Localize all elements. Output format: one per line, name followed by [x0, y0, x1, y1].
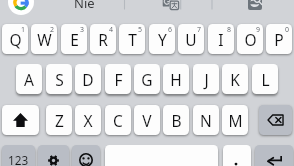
staticText: 1	[21, 25, 26, 35]
staticText: 5	[138, 25, 143, 35]
staticText: J	[204, 69, 209, 90]
button[interactable]: Google Search	[8, 0, 34, 15]
button[interactable]: Shift	[2, 105, 39, 135]
button[interactable]: M	[222, 105, 248, 135]
staticText: H	[170, 69, 182, 90]
button[interactable]: E	[61, 24, 87, 54]
button[interactable]: U	[178, 24, 204, 54]
staticText: G	[141, 69, 153, 90]
button[interactable]	[223, 145, 251, 166]
button[interactable]: Y	[149, 24, 175, 54]
button[interactable]: Nie	[44, 0, 124, 13]
button[interactable]: Emoji	[72, 145, 100, 166]
staticText: F	[114, 69, 123, 90]
staticText: 4	[109, 25, 114, 35]
button[interactable]: Enter	[255, 145, 293, 166]
staticText: S	[55, 69, 64, 90]
staticText: Nie	[74, 0, 95, 12]
button[interactable]: Settings	[38, 145, 69, 166]
staticText: 9	[256, 25, 261, 35]
staticText: N	[200, 110, 212, 131]
staticText: 6	[168, 25, 173, 35]
button[interactable]: Translate	[161, 0, 179, 11]
staticText: 0	[285, 25, 290, 35]
staticText: C	[113, 110, 123, 131]
button[interactable]: W	[31, 24, 57, 54]
staticText: 2	[50, 25, 55, 35]
staticText: 123	[8, 152, 29, 166]
staticText: V	[142, 110, 152, 131]
staticText: I	[218, 29, 224, 50]
button[interactable]: H	[163, 64, 189, 94]
button[interactable]: V	[134, 105, 160, 135]
staticText: P	[274, 29, 284, 50]
button[interactable]: F	[105, 64, 131, 94]
button[interactable]: Search with image	[248, 0, 262, 10]
staticText: L	[261, 69, 270, 90]
staticText: Z	[55, 110, 64, 131]
button[interactable]: R	[90, 24, 116, 54]
staticText: O	[244, 29, 257, 50]
button[interactable]: X	[75, 105, 101, 135]
staticText: A	[24, 69, 34, 90]
button[interactable]: A	[16, 64, 42, 94]
staticText: D	[82, 69, 94, 90]
staticText: 8	[227, 25, 232, 35]
staticText: B	[171, 110, 182, 131]
button[interactable]: O	[237, 24, 263, 54]
staticText: 7	[197, 25, 202, 35]
button[interactable]: G	[134, 64, 160, 94]
button[interactable]: I	[208, 24, 234, 54]
staticText: R	[98, 29, 108, 50]
button[interactable]: S	[46, 64, 72, 94]
button[interactable]: 123	[2, 145, 35, 166]
button[interactable]: P	[266, 24, 292, 54]
button[interactable]: C	[105, 105, 131, 135]
staticText: T	[128, 29, 137, 50]
staticText: Y	[158, 29, 167, 50]
button[interactable]: N	[193, 105, 219, 135]
staticText: E	[70, 29, 79, 50]
staticText: M	[228, 110, 243, 131]
button[interactable]: T	[119, 24, 145, 54]
button[interactable]: K	[222, 64, 248, 94]
staticText: 3	[80, 25, 85, 35]
button[interactable]: L	[252, 64, 278, 94]
button[interactable]: J	[193, 64, 219, 94]
button[interactable]: Backspace	[259, 105, 292, 135]
staticText: X	[83, 110, 93, 131]
staticText: W	[37, 29, 52, 50]
staticText: K	[230, 69, 240, 90]
button[interactable]: Q	[2, 24, 28, 54]
button[interactable]: B	[163, 105, 189, 135]
staticText: Q	[9, 29, 22, 50]
button[interactable]: D	[75, 64, 101, 94]
button[interactable]: Z	[46, 105, 72, 135]
staticText: U	[185, 29, 197, 50]
